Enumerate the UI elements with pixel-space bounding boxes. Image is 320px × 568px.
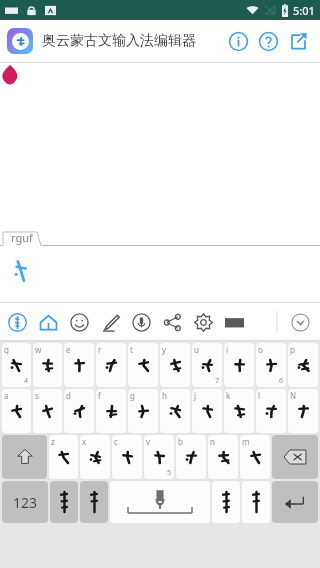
button[interactable]: Mongolian key (212, 481, 240, 523)
button[interactable]: n (208, 435, 238, 479)
button[interactable]: Voice input (130, 311, 152, 333)
button[interactable]: Enter (272, 481, 318, 523)
button[interactable]: f (96, 389, 126, 433)
staticText: y (162, 344, 167, 355)
staticText: w (35, 344, 42, 355)
button[interactable]: Emoji (68, 311, 90, 333)
staticText: n (210, 436, 215, 447)
staticText: u (194, 344, 199, 355)
button[interactable]: t (128, 343, 158, 387)
staticText: a (4, 390, 9, 401)
staticText: r (98, 344, 102, 355)
staticText: f (98, 390, 101, 401)
button[interactable]: Mongolian key (242, 481, 270, 523)
button[interactable]: Space, voice input (110, 481, 210, 523)
staticText: 7 (215, 376, 220, 386)
button[interactable]: m (240, 435, 270, 479)
button[interactable]: Mongolian key (80, 481, 108, 523)
button[interactable]: Share (161, 311, 183, 333)
staticText: s (35, 390, 39, 401)
button[interactable]: e (64, 343, 94, 387)
staticText: g (130, 390, 135, 401)
button[interactable]: Mongolian key (50, 481, 78, 523)
button[interactable]: Shift (2, 435, 47, 479)
staticText: i (226, 344, 229, 355)
button[interactable]: q (2, 343, 31, 387)
staticText: x (82, 436, 87, 447)
button[interactable]: b (176, 435, 206, 479)
staticText: 奥云蒙古文输入法编辑器 (42, 32, 196, 50)
button[interactable]: Home (37, 311, 59, 333)
staticText: q (4, 344, 9, 355)
button[interactable]: l (256, 389, 286, 433)
button[interactable]: rguf (3, 229, 41, 246)
staticText: rguf (11, 230, 33, 245)
button[interactable]: Settings (192, 311, 214, 333)
button[interactable]: i (224, 343, 254, 387)
button[interactable]: o (256, 343, 286, 387)
staticText: 123 (13, 493, 38, 512)
staticText: o (258, 344, 263, 355)
button[interactable]: Keyboard layout (223, 311, 245, 333)
button[interactable]: h (160, 389, 190, 433)
staticText: t (130, 344, 133, 355)
staticText: v (146, 436, 151, 447)
button[interactable]: d (64, 389, 94, 433)
button[interactable]: z (49, 435, 78, 479)
staticText: j (194, 390, 197, 401)
staticText: c (114, 436, 118, 447)
button[interactable]: k (224, 389, 254, 433)
button[interactable]: x (80, 435, 110, 479)
button[interactable]: s (33, 389, 62, 433)
button[interactable]: Handwriting (99, 311, 121, 333)
button[interactable]: w (33, 343, 62, 387)
button[interactable]: Mongolian keyboard (6, 311, 28, 333)
staticText: N (290, 390, 297, 401)
button[interactable]: g (128, 389, 158, 433)
staticText: k (226, 390, 231, 401)
button[interactable] (8, 254, 34, 288)
button[interactable]: Share (283, 26, 313, 56)
button[interactable]: u (192, 343, 222, 387)
staticText: p (290, 344, 295, 355)
staticText: 6 (279, 376, 284, 386)
button[interactable]: Help (253, 26, 283, 56)
staticText: m (242, 436, 250, 447)
staticText: 5:01 (293, 3, 315, 18)
staticText: 5 (167, 468, 172, 478)
button[interactable]: p (288, 343, 318, 387)
button[interactable]: a (2, 389, 31, 433)
button[interactable]: 123 (2, 481, 48, 523)
button[interactable]: y (160, 343, 190, 387)
button[interactable]: Collapse keyboard (285, 307, 315, 337)
staticText: l (258, 390, 261, 401)
button[interactable]: r (96, 343, 126, 387)
button[interactable]: Backspace (272, 435, 318, 479)
button[interactable]: c (112, 435, 142, 479)
staticText: 4 (24, 376, 29, 386)
staticText: h (162, 390, 167, 401)
staticText: z (51, 436, 55, 447)
staticText: b (178, 436, 183, 447)
button[interactable]: j (192, 389, 222, 433)
button[interactable]: N (288, 389, 318, 433)
button[interactable]: Info (223, 26, 253, 56)
staticText: d (66, 390, 71, 401)
button[interactable]: v (144, 435, 174, 479)
staticText: e (66, 344, 71, 355)
